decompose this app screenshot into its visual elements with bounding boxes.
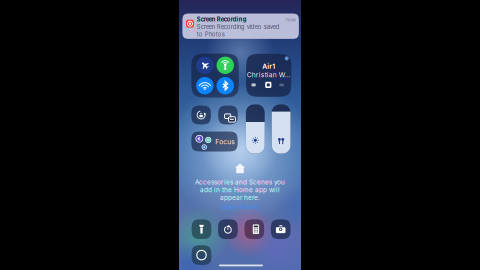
button[interactable]: Cellular Data [217,57,234,74]
button[interactable]: Airplane Mode [196,57,214,74]
button[interactable]: Air1 [246,54,291,97]
staticText: add in the Home app will [200,186,280,194]
button[interactable]: Screen Recording [192,245,211,265]
staticText: Open Home [221,203,259,211]
staticText: Christian W… [247,71,291,79]
button[interactable]: Rotation Lock [191,105,211,124]
button[interactable]: Brightness [246,104,265,154]
button[interactable]: Timer [218,219,238,239]
button[interactable]: Volume [272,104,290,154]
staticText: appear here. [220,194,260,201]
button[interactable]: Bluetooth [217,77,234,94]
staticText: to Photos [197,31,225,38]
button[interactable]: Open Home [221,203,259,211]
staticText: Screen Recording [197,16,247,23]
button[interactable]: Wi-Fi [196,77,214,94]
staticText: Screen Recording video saved [197,23,280,30]
button[interactable]: Flashlight [192,219,211,239]
staticText: now [286,17,296,23]
button[interactable]: Calculator [244,219,264,239]
button[interactable]: Screen Recording [182,13,299,39]
button[interactable]: Camera [271,219,291,239]
button[interactable]: Focus [191,131,238,151]
staticText: Focus [215,138,235,146]
staticText: Air1 [262,62,275,70]
button[interactable]: Screen Mirroring [218,105,238,124]
staticText: Accessories and Scenes you [195,178,285,186]
